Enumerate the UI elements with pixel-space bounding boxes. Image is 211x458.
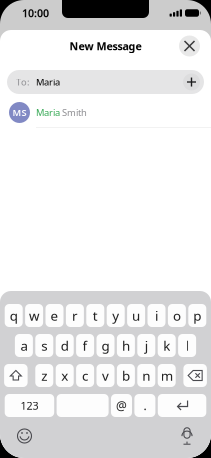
- button[interactable]: space: [57, 394, 109, 417]
- button[interactable]: w: [25, 304, 43, 327]
- button[interactable]: c: [76, 364, 94, 387]
- button[interactable]: u: [127, 304, 145, 327]
- button[interactable]: v: [96, 364, 114, 387]
- button[interactable]: Dictate: [180, 427, 194, 445]
- button[interactable]: h: [117, 334, 135, 357]
- staticText: a: [20, 337, 27, 354]
- staticText: y: [112, 307, 119, 324]
- button[interactable]: i: [147, 304, 165, 327]
- button[interactable]: period: [134, 394, 155, 417]
- staticText: g: [101, 337, 109, 354]
- staticText: MS: [12, 106, 26, 119]
- staticText: i: [155, 307, 158, 324]
- staticText: h: [122, 337, 130, 354]
- button[interactable]: z: [35, 364, 53, 387]
- button[interactable]: q: [5, 304, 23, 327]
- button[interactable]: a: [15, 334, 33, 357]
- button[interactable]: k: [158, 334, 176, 357]
- button[interactable]: Return: [158, 394, 206, 417]
- staticText: d: [61, 337, 69, 354]
- staticText: f: [83, 337, 88, 354]
- button[interactable]: Emoji: [17, 428, 32, 443]
- staticText: w: [29, 307, 39, 324]
- staticText: k: [163, 337, 170, 354]
- staticText: q: [10, 307, 18, 324]
- staticText: v: [102, 367, 109, 384]
- button[interactable]: Shift: [4, 364, 28, 387]
- staticText: @: [116, 397, 127, 413]
- button[interactable]: b: [117, 364, 135, 387]
- staticText: m: [161, 367, 173, 384]
- staticText: 123: [20, 398, 38, 413]
- staticText: .: [143, 397, 146, 413]
- staticText: Maria: [36, 76, 60, 88]
- button[interactable]: at sign: [111, 394, 132, 417]
- button[interactable]: r: [66, 304, 84, 327]
- button[interactable]: t: [86, 304, 104, 327]
- staticText: j: [145, 337, 148, 354]
- staticText: z: [41, 367, 47, 384]
- staticText: s: [41, 337, 47, 354]
- button[interactable]: y: [107, 304, 125, 327]
- staticText: Smith: [60, 106, 87, 119]
- staticText: p: [193, 307, 201, 324]
- button[interactable]: g: [96, 334, 114, 357]
- staticText: x: [61, 367, 68, 384]
- staticText: 10:00: [22, 6, 49, 20]
- staticText: u: [132, 307, 140, 324]
- staticText: l: [186, 337, 189, 354]
- button[interactable]: f: [76, 334, 94, 357]
- staticText: e: [50, 307, 58, 324]
- staticText: New Message: [69, 39, 141, 53]
- button[interactable]: p: [188, 304, 206, 327]
- staticText: Maria: [36, 106, 60, 119]
- staticText: c: [82, 367, 88, 384]
- button[interactable]: s: [35, 334, 53, 357]
- button[interactable]: n: [137, 364, 155, 387]
- staticText: b: [122, 367, 130, 384]
- button[interactable]: Numbers: [5, 394, 54, 417]
- button[interactable]: e: [45, 304, 63, 327]
- button[interactable]: MS: [0, 98, 211, 128]
- button[interactable]: d: [56, 334, 74, 357]
- staticText: n: [142, 367, 150, 384]
- staticText: o: [173, 307, 181, 324]
- staticText: t: [93, 307, 98, 324]
- button[interactable]: Close: [179, 35, 200, 56]
- staticText: To:: [16, 76, 30, 88]
- staticText: r: [72, 307, 78, 324]
- button[interactable]: x: [56, 364, 74, 387]
- button[interactable]: Add contact: [183, 73, 200, 90]
- button[interactable]: m: [158, 364, 176, 387]
- button[interactable]: j: [137, 334, 155, 357]
- button[interactable]: Delete: [183, 364, 207, 387]
- button[interactable]: l: [178, 334, 196, 357]
- button[interactable]: o: [168, 304, 186, 327]
